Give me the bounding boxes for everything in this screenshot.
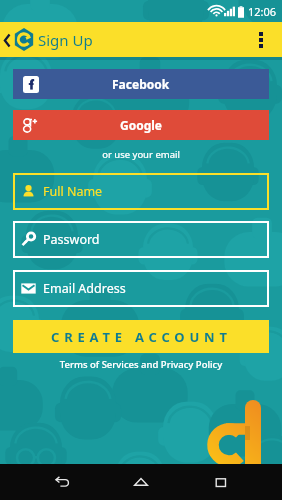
staticText: Sign Up <box>38 30 93 50</box>
button[interactable]: More options <box>248 22 274 57</box>
button[interactable]: Back <box>0 24 14 56</box>
staticText: Full Name <box>43 183 103 200</box>
staticText: Email Address <box>43 280 126 297</box>
button[interactable]: Full Name <box>13 173 269 210</box>
button[interactable]: Terms of Services and Privacy Policy <box>0 358 282 371</box>
button[interactable]: Google <box>13 110 269 140</box>
staticText: Password <box>43 231 100 248</box>
staticText: or use your email <box>0 148 282 161</box>
button[interactable]: Home <box>123 464 159 500</box>
button[interactable]: Recents <box>203 464 239 500</box>
button[interactable]: Back <box>44 464 80 500</box>
button[interactable]: Email Address <box>13 270 269 307</box>
button[interactable]: Facebook <box>13 69 269 99</box>
button[interactable]: CREATE ACCOUNT <box>13 320 269 353</box>
staticText: 12:06 <box>248 4 277 19</box>
button[interactable]: Password <box>13 221 269 258</box>
staticText: Facebook <box>112 76 170 92</box>
staticText: CREATE ACCOUNT <box>51 328 232 346</box>
staticText: Google <box>120 117 163 133</box>
